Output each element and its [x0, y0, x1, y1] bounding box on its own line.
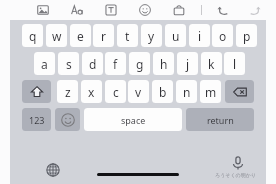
button[interactable]: Text format — [68, 1, 86, 19]
staticText: ろうそくの明かり — [215, 172, 256, 178]
button[interactable]: y — [141, 24, 162, 47]
staticText: j — [186, 56, 190, 72]
button[interactable]: e — [70, 24, 91, 47]
button[interactable]: u — [165, 24, 186, 47]
button[interactable]: l — [224, 52, 245, 75]
staticText: c — [113, 84, 119, 100]
button[interactable]: return — [186, 108, 254, 131]
button[interactable]: q — [22, 24, 43, 47]
staticText: i — [198, 28, 202, 44]
staticText: n — [183, 84, 191, 100]
staticText: return — [207, 114, 234, 126]
button[interactable]: Switch language — [42, 160, 64, 180]
button[interactable]: o — [212, 24, 233, 47]
button[interactable]: Undo — [214, 1, 232, 19]
staticText: r — [101, 28, 106, 44]
button[interactable]: Shift — [22, 80, 51, 103]
button[interactable]: v — [128, 80, 149, 103]
staticText: w — [52, 28, 62, 44]
button[interactable]: Redo — [246, 1, 264, 19]
button[interactable]: w — [46, 24, 67, 47]
staticText: l — [233, 56, 237, 72]
button[interactable]: Emoji — [136, 1, 154, 19]
button[interactable]: Text box — [102, 1, 120, 19]
button[interactable]: r — [93, 24, 114, 47]
button[interactable]: m — [200, 80, 221, 103]
button[interactable]: n — [176, 80, 197, 103]
button[interactable]: Dictate — [220, 156, 256, 182]
staticText: q — [29, 28, 37, 44]
staticText: g — [136, 56, 144, 72]
button[interactable]: space — [84, 108, 182, 131]
button[interactable]: h — [153, 52, 174, 75]
staticText: y — [148, 28, 155, 44]
button[interactable]: t — [117, 24, 138, 47]
button[interactable]: Emoji keyboard — [55, 108, 80, 131]
button[interactable]: i — [189, 24, 210, 47]
button[interactable]: j — [177, 52, 198, 75]
staticText: o — [219, 28, 227, 44]
staticText: h — [160, 56, 168, 72]
staticText: d — [89, 56, 97, 72]
staticText: s — [66, 56, 72, 72]
staticText: t — [125, 28, 130, 44]
staticText: k — [208, 56, 215, 72]
staticText: a — [41, 56, 48, 72]
button[interactable]: b — [152, 80, 173, 103]
button[interactable]: p — [236, 24, 257, 47]
staticText: x — [88, 84, 95, 100]
button[interactable]: k — [201, 52, 222, 75]
staticText: 123 — [29, 114, 45, 126]
staticText: p — [243, 28, 251, 44]
staticText: m — [205, 84, 217, 100]
button[interactable]: d — [82, 52, 103, 75]
button[interactable]: 123 — [22, 108, 51, 131]
staticText: e — [77, 28, 84, 44]
staticText: v — [135, 84, 142, 100]
button[interactable]: Attach — [170, 1, 188, 19]
button[interactable]: f — [105, 52, 126, 75]
button[interactable]: s — [58, 52, 79, 75]
staticText: z — [65, 84, 71, 100]
staticText: b — [159, 84, 167, 100]
button[interactable]: c — [105, 80, 126, 103]
button[interactable]: g — [129, 52, 150, 75]
button[interactable]: Photos — [34, 1, 52, 19]
button[interactable]: z — [57, 80, 78, 103]
button[interactable]: a — [34, 52, 55, 75]
staticText: space — [121, 114, 146, 126]
button[interactable]: Backspace — [225, 80, 254, 103]
staticText: f — [113, 56, 118, 72]
button[interactable]: x — [81, 80, 102, 103]
staticText: u — [172, 28, 180, 44]
